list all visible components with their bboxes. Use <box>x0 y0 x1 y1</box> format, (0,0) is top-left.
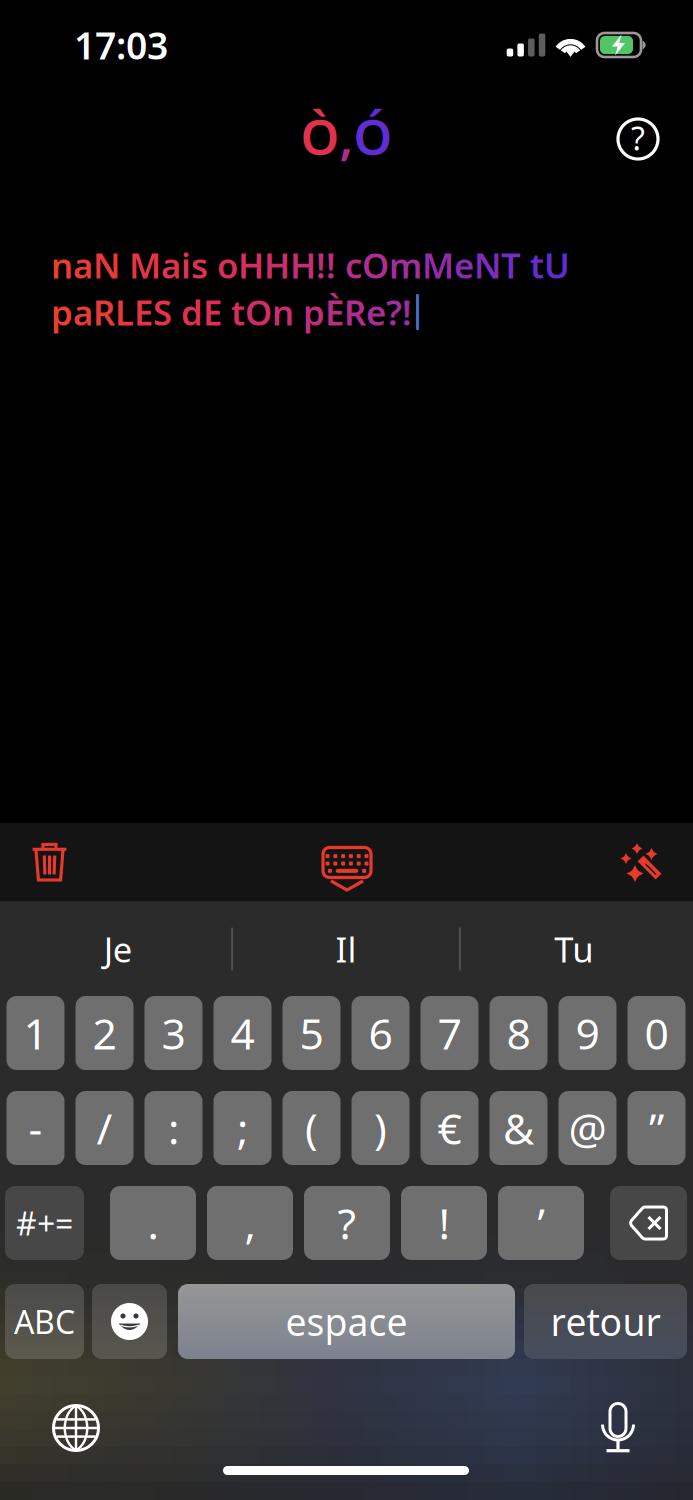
staticText: , <box>244 1195 255 1251</box>
button[interactable]: Hide keyboard <box>289 823 399 902</box>
button[interactable]: ! <box>401 1186 487 1260</box>
staticText: L <box>115 289 134 335</box>
staticText: Ò <box>300 103 339 169</box>
button[interactable]: 5 <box>282 996 340 1070</box>
button[interactable]: : <box>144 1091 202 1165</box>
staticText: s <box>191 242 208 288</box>
staticText: a <box>161 242 181 288</box>
button[interactable]: Je <box>5 902 231 996</box>
staticText: H <box>238 242 264 288</box>
button[interactable]: 1 <box>6 996 64 1070</box>
staticText: p <box>51 289 73 335</box>
button[interactable]: Next keyboard <box>32 1395 120 1461</box>
staticText: H <box>264 242 290 288</box>
staticText: m <box>389 242 422 288</box>
button[interactable]: 3 <box>144 996 202 1070</box>
staticText: ’ <box>537 1195 544 1251</box>
button[interactable]: @ <box>558 1091 616 1165</box>
button[interactable]: & <box>489 1091 547 1165</box>
button[interactable]: 2 <box>75 996 133 1070</box>
staticText: 17:03 <box>74 20 168 70</box>
button[interactable]: ” <box>627 1091 685 1165</box>
staticText: retour <box>550 1297 660 1346</box>
staticText: ? <box>631 117 645 159</box>
button[interactable]: - <box>6 1091 64 1165</box>
staticText: e <box>366 289 386 335</box>
button[interactable]: Il <box>233 902 459 996</box>
staticText: H <box>290 242 316 288</box>
staticText: E <box>134 289 153 335</box>
button[interactable]: Delete text <box>0 823 99 902</box>
button[interactable]: 6 <box>351 996 409 1070</box>
staticText: #+= <box>16 1202 73 1244</box>
staticText: i <box>181 242 191 288</box>
staticText: 0 <box>644 1005 668 1061</box>
staticText: S <box>153 289 172 335</box>
staticText: Ó <box>353 103 392 169</box>
staticText: R <box>344 289 366 335</box>
button[interactable]: Delete <box>610 1186 687 1260</box>
button[interactable]: 0 <box>627 996 685 1070</box>
staticText: ! <box>316 242 326 288</box>
button[interactable]: ) <box>351 1091 409 1165</box>
button[interactable]: #+= <box>5 1186 84 1260</box>
button[interactable]: 7 <box>420 996 478 1070</box>
button[interactable]: ’ <box>498 1186 584 1260</box>
staticText: 5 <box>299 1005 323 1061</box>
staticText: 2 <box>92 1005 116 1061</box>
button[interactable]: Emoji <box>92 1284 167 1359</box>
button[interactable]: Help <box>602 100 674 172</box>
button[interactable]: 9 <box>558 996 616 1070</box>
button[interactable]: . <box>110 1186 196 1260</box>
button[interactable]: ( <box>282 1091 340 1165</box>
staticText: ? <box>386 289 402 335</box>
button[interactable]: 4 <box>213 996 271 1070</box>
button[interactable]: 8 <box>489 996 547 1070</box>
staticText: T <box>501 242 521 288</box>
staticText: t <box>530 242 544 288</box>
staticText: M <box>129 242 161 288</box>
button[interactable]: Auto style text <box>589 823 693 902</box>
button[interactable]: / <box>75 1091 133 1165</box>
button[interactable]: ; <box>213 1091 271 1165</box>
staticText: ” <box>649 1100 664 1156</box>
staticText: 8 <box>506 1005 530 1061</box>
staticText: È <box>325 289 344 335</box>
staticText: / <box>96 1100 112 1156</box>
button[interactable]: , <box>207 1186 293 1260</box>
staticText: M <box>422 242 454 288</box>
staticText: d <box>181 289 203 335</box>
button[interactable]: ABC <box>5 1284 84 1359</box>
button[interactable]: Tu <box>461 902 687 996</box>
button[interactable]: retour <box>524 1284 687 1359</box>
staticText: Je <box>104 926 133 972</box>
staticText: a <box>73 289 93 335</box>
staticText: p <box>303 289 325 335</box>
button[interactable]: ? <box>304 1186 390 1260</box>
staticText: Il <box>335 926 356 972</box>
staticText: - <box>28 1100 42 1156</box>
staticText: n <box>51 242 73 288</box>
staticText: R <box>93 289 115 335</box>
staticText: espace <box>285 1297 407 1346</box>
staticText: U <box>544 242 570 288</box>
staticText: : <box>168 1100 179 1156</box>
staticText: ! <box>402 289 412 335</box>
staticText: o <box>217 242 238 288</box>
staticText: ? <box>337 1195 356 1251</box>
staticText: ! <box>438 1195 449 1251</box>
button[interactable]: Dictation <box>574 1395 662 1461</box>
button[interactable]: € <box>420 1091 478 1165</box>
staticText: 3 <box>161 1005 185 1061</box>
staticText: € <box>437 1100 461 1156</box>
staticText: N <box>93 242 120 288</box>
staticText: 7 <box>437 1005 461 1061</box>
button[interactable]: espace <box>178 1284 515 1359</box>
staticText: ) <box>374 1100 387 1156</box>
staticText: O <box>362 242 389 288</box>
